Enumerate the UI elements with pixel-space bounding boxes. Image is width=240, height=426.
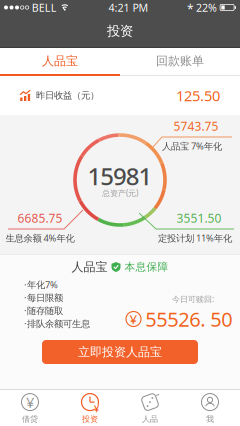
staticText: ¥ (26, 392, 34, 412)
staticText: ·年化7% (24, 278, 58, 291)
staticText: 125.50 (176, 86, 220, 105)
staticText: 昨日收益（元） (36, 90, 99, 101)
button[interactable]: 人品 (120, 390, 180, 426)
staticText: 我 (206, 414, 214, 424)
staticText: 5743.75 (173, 118, 218, 134)
staticText: 回款账单 (156, 54, 204, 68)
staticText: 投资 (82, 414, 98, 424)
staticText: 人品宝 (71, 260, 107, 274)
staticText: ·每日限额 (24, 291, 63, 304)
staticText: 立即投资人品宝 (78, 345, 162, 359)
staticText: 4:21 PM (108, 0, 148, 15)
staticText: BELL (32, 0, 57, 15)
button[interactable]: 立即投资人品宝 (42, 340, 198, 364)
button[interactable]: 回款账单 (120, 48, 240, 74)
staticText: 本息保障 (124, 260, 168, 273)
button[interactable]: 昨日收益（元） (0, 76, 240, 115)
staticText: 15981 (87, 160, 153, 192)
button[interactable]: ¥ (0, 390, 60, 426)
staticText: 借贷 (22, 414, 38, 424)
staticText: 定投计划 11%年化 (158, 232, 232, 244)
staticText: 今日可赎回: (172, 294, 214, 304)
button[interactable]: 人品宝 (0, 48, 120, 74)
staticText: 投资 (107, 23, 133, 39)
staticText: 55526. 50 (145, 306, 232, 332)
staticText: ·排队余额可生息 (24, 317, 90, 330)
button[interactable]: ¥ (60, 390, 120, 426)
staticText: * (187, 1, 194, 17)
staticText: 3551.50 (176, 210, 221, 226)
staticText: 人品宝 7%年化 (162, 140, 222, 152)
button[interactable]: 我 (180, 390, 240, 426)
staticText: 总资产(元) (102, 188, 138, 198)
staticText: 人品 (142, 414, 158, 424)
staticText: ¥ (94, 402, 99, 415)
staticText: 生息余额 4%年化 (5, 232, 74, 244)
staticText: 22% (196, 0, 217, 15)
staticText: 6685.75 (17, 210, 62, 226)
staticText: ·随存随取 (24, 304, 63, 317)
staticText: 人品宝 (42, 54, 78, 68)
staticText: ¥ (129, 310, 137, 328)
